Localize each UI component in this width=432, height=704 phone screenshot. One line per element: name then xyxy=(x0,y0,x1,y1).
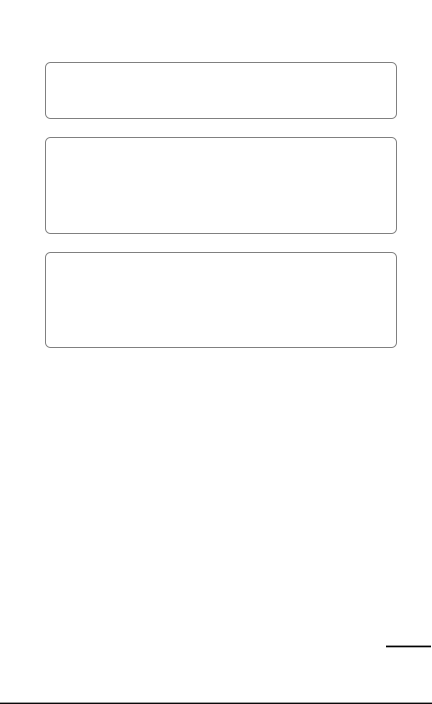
button[interactable]: Field one xyxy=(45,62,397,119)
button[interactable]: Field three xyxy=(45,252,397,348)
button[interactable]: Field two xyxy=(45,137,397,234)
